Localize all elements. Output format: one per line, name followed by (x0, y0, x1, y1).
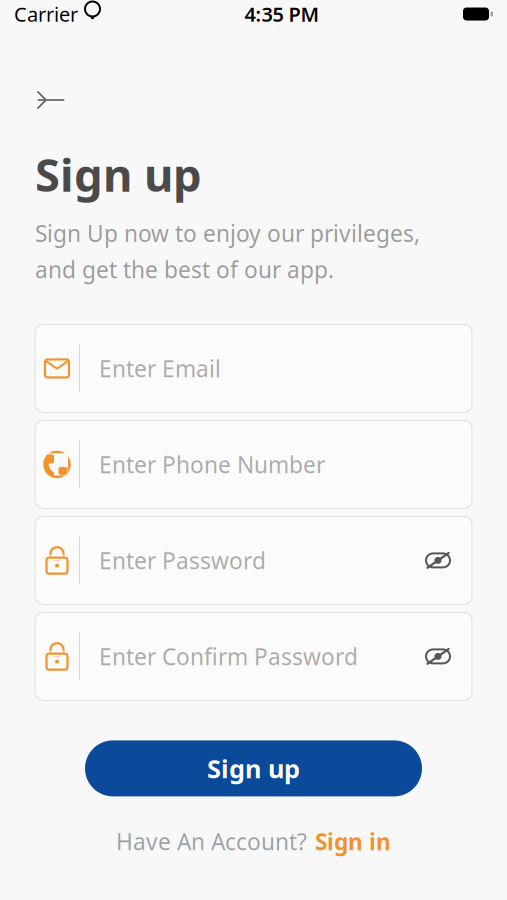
staticText: Sign up (207, 752, 300, 785)
staticText: Enter Email (99, 353, 221, 383)
staticText: Have An Account? (116, 826, 307, 856)
button[interactable]: Back (28, 80, 74, 120)
staticText: Enter Password (99, 545, 266, 575)
staticText: Sign Up now to enjoy our privileges, and… (35, 218, 420, 284)
staticText: 4:35 PM (244, 1, 319, 27)
staticText: Enter Phone Number (99, 449, 325, 479)
button[interactable]: Have An Account? (106, 818, 401, 864)
staticText: Sign in (315, 826, 391, 856)
button[interactable]: Sign up (85, 740, 422, 796)
staticText: Sign up (35, 144, 202, 204)
staticText: Carrier (14, 1, 78, 27)
staticText: Enter Confirm Password (99, 641, 358, 671)
